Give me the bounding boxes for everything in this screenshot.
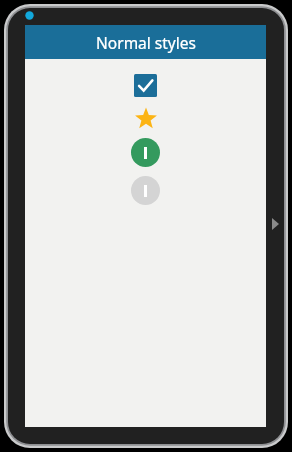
staticText: Normal styles <box>96 32 196 53</box>
button[interactable]: Enabled control <box>131 138 160 167</box>
button[interactable]: Checkbox, checked <box>134 74 157 97</box>
button[interactable]: Rating star <box>134 107 158 130</box>
button[interactable]: Disabled control <box>131 176 160 205</box>
